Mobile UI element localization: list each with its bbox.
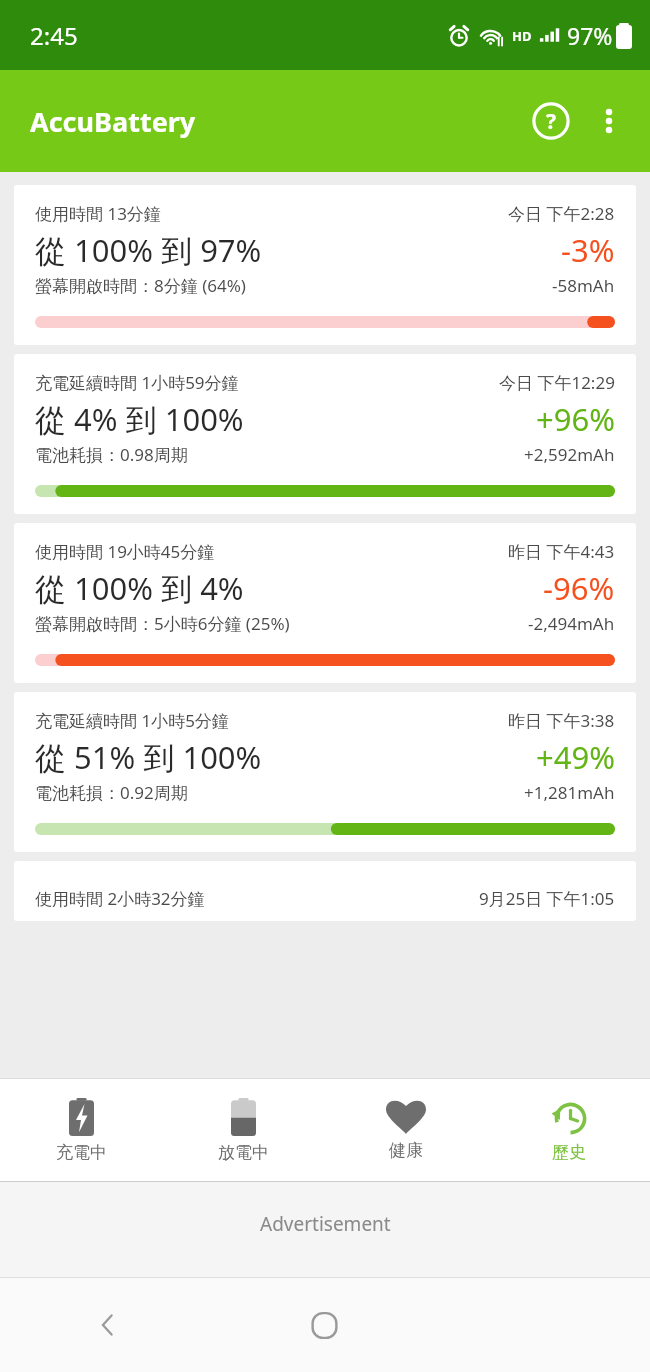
button[interactable]: More options: [580, 92, 638, 150]
staticText: 9月25日 下午1:05: [479, 887, 615, 910]
button[interactable]: 歷史: [487, 1079, 650, 1181]
button[interactable]: 使用時間 13分鐘: [14, 185, 636, 345]
staticText: 螢幕開啟時間：5小時6分鐘 (25%): [35, 612, 290, 635]
staticText: 從 100% 到 97%: [35, 229, 262, 271]
staticText: HD: [512, 27, 532, 45]
staticText: 放電中: [218, 1142, 269, 1163]
staticText: 充電延續時間 1小時5分鐘: [35, 709, 229, 732]
staticText: 健康: [389, 1140, 423, 1161]
staticText: +2,592mAh: [524, 443, 615, 466]
staticText: -96%: [543, 567, 615, 609]
staticText: 今日 下午2:28: [508, 202, 615, 225]
button[interactable]: Help: [522, 92, 580, 150]
staticText: +49%: [536, 736, 615, 778]
staticText: 從 100% 到 4%: [35, 567, 244, 609]
staticText: +1,281mAh: [524, 781, 615, 804]
staticText: 從 51% 到 100%: [35, 736, 262, 778]
staticText: 電池耗損：0.98周期: [35, 443, 188, 466]
staticText: 97%: [567, 20, 613, 51]
button[interactable]: Back: [0, 1278, 216, 1372]
staticText: 充電中: [56, 1142, 107, 1163]
staticText: 昨日 下午4:43: [508, 540, 615, 563]
button[interactable]: 充電延續時間 1小時59分鐘: [14, 354, 636, 514]
staticText: -2,494mAh: [528, 612, 615, 635]
staticText: AccuBattery: [30, 103, 196, 140]
staticText: Advertisement: [260, 1211, 391, 1237]
button[interactable]: 充電中: [0, 1079, 162, 1181]
staticText: 使用時間 13分鐘: [35, 202, 161, 225]
staticText: 螢幕開啟時間：8分鐘 (64%): [35, 274, 246, 297]
button[interactable]: 放電中: [162, 1079, 324, 1181]
staticText: 電池耗損：0.92周期: [35, 781, 188, 804]
staticText: -3%: [561, 229, 615, 271]
button[interactable]: 使用時間 19小時45分鐘: [14, 523, 636, 683]
staticText: ?: [546, 107, 557, 136]
staticText: 2:45: [30, 19, 78, 52]
staticText: 歷史: [552, 1142, 586, 1163]
staticText: 昨日 下午3:38: [508, 709, 615, 732]
staticText: 使用時間 19小時45分鐘: [35, 540, 215, 563]
button[interactable]: Home: [216, 1278, 433, 1372]
button[interactable]: 使用時間 2小時32分鐘: [14, 861, 636, 921]
staticText: 從 4% 到 100%: [35, 398, 244, 440]
button[interactable]: 充電延續時間 1小時5分鐘: [14, 692, 636, 852]
staticText: -58mAh: [552, 274, 615, 297]
staticText: +96%: [536, 398, 615, 440]
staticText: 使用時間 2小時32分鐘: [35, 887, 205, 910]
staticText: 今日 下午12:29: [499, 371, 615, 394]
button[interactable]: 健康: [324, 1079, 487, 1181]
staticText: 充電延續時間 1小時59分鐘: [35, 371, 239, 394]
